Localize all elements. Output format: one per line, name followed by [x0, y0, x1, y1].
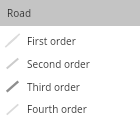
button[interactable]: Third order road symbol [0, 75, 140, 98]
other: First order road symbol [4, 32, 21, 49]
staticText: Fourth order [27, 102, 87, 116]
other: Third order road symbol [4, 78, 21, 95]
button[interactable]: Fourth order road symbol [0, 98, 140, 120]
other: Fourth order road symbol [4, 101, 21, 118]
button[interactable]: Second order road symbol [0, 52, 140, 75]
staticText: Second order [27, 57, 90, 71]
button[interactable]: Road [0, 0, 140, 26]
staticText: Third order [27, 80, 80, 94]
staticText: First order [27, 34, 76, 48]
other: Second order road symbol [4, 55, 21, 72]
staticText: Road [7, 6, 32, 20]
button[interactable]: First order road symbol [0, 29, 140, 52]
